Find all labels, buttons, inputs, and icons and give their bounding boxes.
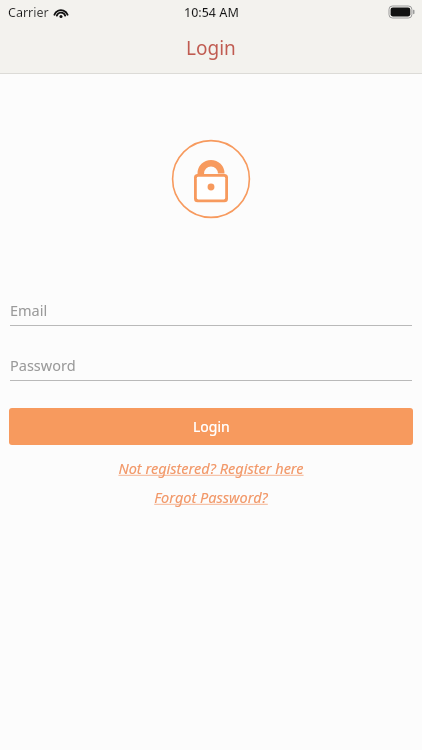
staticText: Carrier: [8, 4, 49, 21]
other: Secure login: [171, 139, 251, 219]
button[interactable]: Email: [10, 297, 412, 326]
staticText: Login: [193, 417, 230, 436]
staticText: Not registered? Register here: [118, 458, 304, 478]
button[interactable]: Password: [10, 352, 412, 381]
staticText: Email: [10, 300, 48, 320]
button[interactable]: Not registered? Register here: [0, 458, 422, 478]
button[interactable]: Forgot Password?: [0, 487, 422, 507]
staticText: Login: [186, 35, 236, 61]
staticText: Password: [10, 355, 76, 375]
button[interactable]: Login: [9, 408, 413, 445]
staticText: 10:54 AM: [184, 4, 239, 21]
staticText: Forgot Password?: [154, 487, 268, 507]
